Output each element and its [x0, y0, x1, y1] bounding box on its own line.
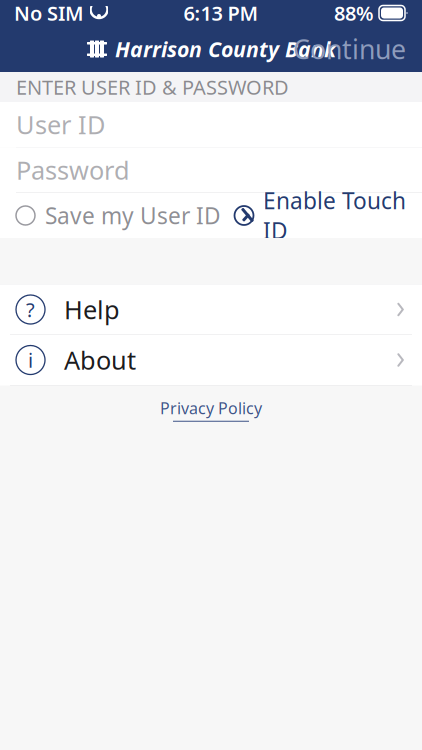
staticText: Password [16, 153, 130, 187]
button[interactable]: Continue [277, 23, 422, 75]
staticText: User ID [16, 108, 105, 141]
staticText: 6:13 PM [183, 0, 258, 26]
staticText: Continue [293, 31, 406, 67]
staticText: 88% [334, 0, 374, 26]
staticText: ENTER USER ID & PASSWORD [16, 74, 289, 100]
staticText: About [64, 343, 136, 377]
staticText: i [28, 347, 33, 373]
staticText: Privacy Policy [160, 397, 262, 419]
button[interactable]: Save my User ID [16, 192, 221, 238]
button[interactable]: Privacy Policy [160, 385, 262, 432]
staticText: Save my User ID [45, 200, 221, 230]
button[interactable]: ? [0, 284, 422, 335]
staticText: Help [64, 293, 120, 326]
staticText: No SIM [14, 0, 84, 26]
button[interactable]: Enable Touch ID [233, 177, 406, 254]
button[interactable]: i [0, 335, 422, 385]
staticText: ? [26, 296, 35, 323]
staticText: Enable Touch ID [263, 185, 406, 246]
staticText: Harrison County Bank [115, 35, 336, 63]
